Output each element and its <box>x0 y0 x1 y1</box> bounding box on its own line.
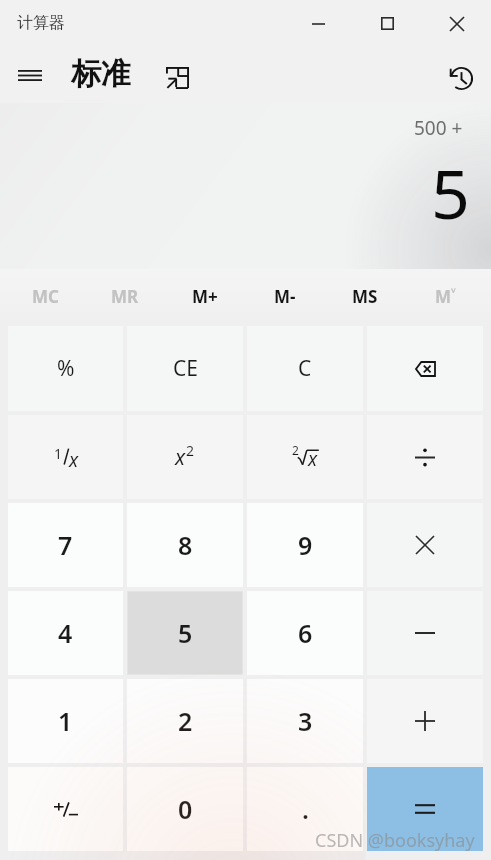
button[interactable]: 1 <box>8 679 123 763</box>
staticText: 5 <box>431 146 470 239</box>
button[interactable]: Backspace <box>367 326 483 411</box>
staticText: 8 <box>178 528 193 562</box>
button[interactable]: 3 <box>247 679 363 763</box>
staticText: 7 <box>58 528 73 562</box>
button[interactable]: MC <box>6 269 85 324</box>
staticText: . <box>302 792 309 826</box>
staticText: x <box>175 443 186 472</box>
button[interactable]: 8 <box>127 503 243 587</box>
button[interactable]: Minimize <box>284 0 353 47</box>
staticText: MC <box>32 285 59 308</box>
staticText: CE <box>173 354 198 383</box>
staticText: 9 <box>298 528 313 562</box>
button[interactable]: % <box>8 326 123 411</box>
button[interactable]: 1 <box>8 415 123 499</box>
staticText: 3 <box>298 704 313 738</box>
button[interactable]: Close <box>422 0 491 47</box>
button[interactable]: 5 <box>128 592 242 674</box>
staticText: 计算器 <box>17 13 65 33</box>
button[interactable]: 7 <box>8 503 123 587</box>
staticText: MS <box>352 285 378 308</box>
staticText: 1 <box>58 704 73 738</box>
button[interactable] <box>367 503 483 587</box>
staticText: M+ <box>192 285 218 308</box>
button[interactable]: 6 <box>247 591 363 675</box>
button[interactable]: Navigation menu <box>6 51 54 99</box>
staticText: 4 <box>58 616 73 650</box>
button[interactable]: Keep on top <box>154 53 198 97</box>
button[interactable]: Plus minus <box>8 767 123 851</box>
staticText: C <box>298 354 312 383</box>
button[interactable]: 2 <box>127 679 243 763</box>
button[interactable]: M+ <box>165 269 245 324</box>
button[interactable] <box>367 767 483 851</box>
staticText: 5 <box>178 616 193 650</box>
staticText: x <box>69 447 79 473</box>
staticText: 0 <box>178 792 193 826</box>
staticText: 2 <box>178 704 193 738</box>
button[interactable]: Maximize <box>353 0 422 47</box>
other: Backspace <box>415 361 436 377</box>
button[interactable]: MR <box>85 269 165 324</box>
other: Plus minus <box>54 801 78 818</box>
button[interactable]: 0 <box>127 767 243 851</box>
button[interactable]: M˅ <box>405 269 485 324</box>
button[interactable]: 4 <box>8 591 123 675</box>
staticText: M˅ <box>435 285 456 308</box>
button[interactable]: x <box>127 415 243 499</box>
staticText: CSDN @booksyhay <box>315 828 475 853</box>
button[interactable] <box>367 591 483 675</box>
button[interactable]: M- <box>245 269 325 324</box>
staticText: % <box>57 354 75 383</box>
button[interactable]: MS <box>325 269 405 324</box>
staticText: 6 <box>298 616 313 650</box>
button[interactable]: . <box>247 767 363 851</box>
button[interactable]: CE <box>127 326 243 411</box>
staticText: MR <box>111 285 139 308</box>
staticText: 标准 <box>71 55 131 93</box>
button[interactable]: C <box>247 326 363 411</box>
staticText: M- <box>274 285 296 308</box>
staticText: 2 <box>186 441 195 460</box>
button[interactable] <box>367 415 483 499</box>
staticText: 1 <box>54 444 63 463</box>
button[interactable]: 2 <box>247 415 363 499</box>
staticText: x <box>308 446 318 472</box>
button[interactable] <box>367 679 483 763</box>
button[interactable]: History <box>435 53 479 97</box>
button[interactable]: 9 <box>247 503 363 587</box>
staticText: 500 + <box>414 115 463 141</box>
staticText: 2 <box>292 442 299 458</box>
